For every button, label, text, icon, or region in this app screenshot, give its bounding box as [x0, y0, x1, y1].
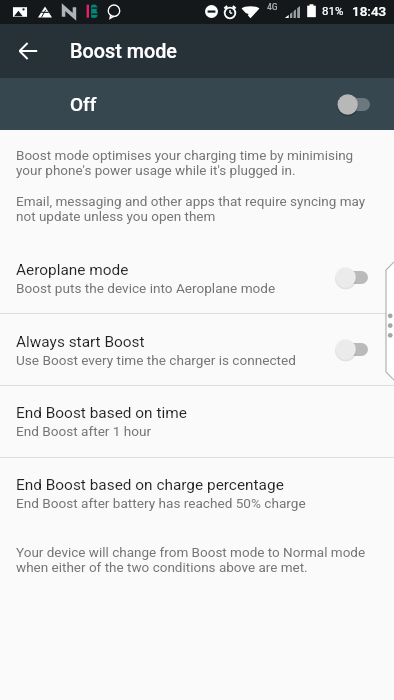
staticText: 18:43	[352, 3, 387, 19]
button[interactable]: Navigate up	[6, 29, 50, 73]
staticText: Use Boost every time the charger is conn…	[16, 352, 296, 368]
button[interactable]: End Boost based on time	[0, 386, 394, 457]
staticText: Off	[70, 93, 97, 115]
staticText: 4G	[267, 2, 278, 12]
staticText: Aeroplane mode	[16, 261, 129, 279]
button[interactable]: End Boost based on charge percentage	[0, 458, 394, 529]
staticText: Boost mode optimises your charging time …	[16, 147, 354, 178]
staticText: Email, messaging and other apps that req…	[16, 193, 366, 224]
button[interactable]: Always start Boost	[0, 314, 394, 385]
staticText: End Boost after 1 hour	[16, 423, 152, 439]
staticText: Boost mode	[70, 40, 177, 63]
staticText: Always start Boost	[16, 333, 145, 351]
staticText: 81%	[322, 4, 344, 17]
staticText: Boost puts the device into Aeroplane mod…	[16, 280, 276, 296]
staticText: End Boost after battery has reached 50% …	[16, 495, 306, 511]
button[interactable]: Aeroplane mode	[0, 242, 394, 313]
staticText: Your device will change from Boost mode …	[16, 544, 366, 575]
button[interactable]: Off	[0, 78, 394, 130]
staticText: End Boost based on charge percentage	[16, 476, 284, 494]
button[interactable]: Fast scroll	[386, 256, 394, 386]
staticText: End Boost based on time	[16, 404, 187, 422]
